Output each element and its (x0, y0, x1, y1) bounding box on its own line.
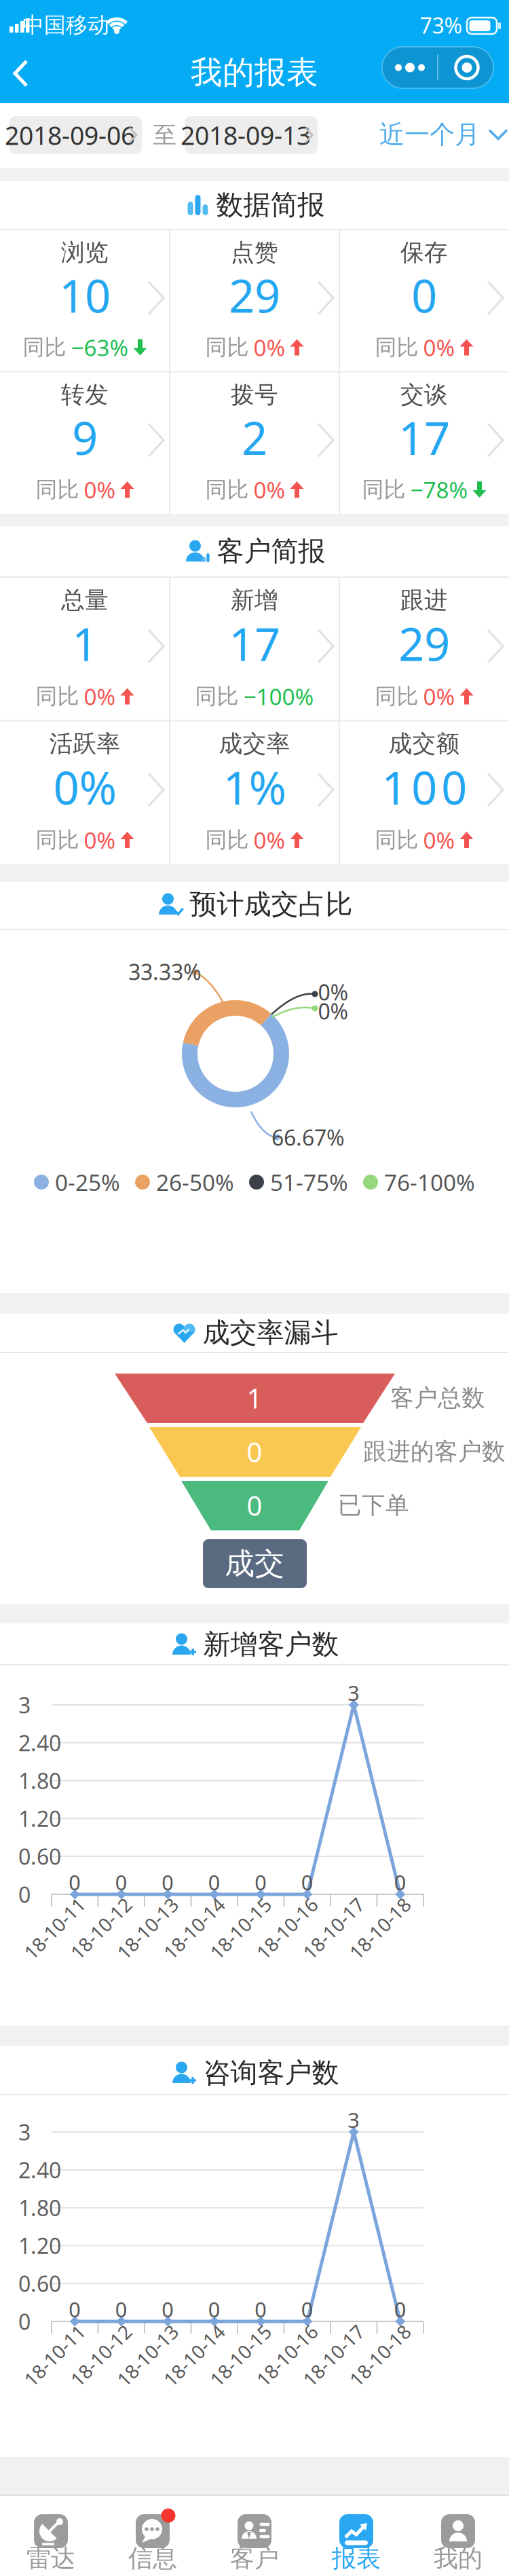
staticText: 同比 (36, 476, 79, 503)
staticText: 2 (242, 407, 267, 467)
staticText: −78% (410, 475, 468, 505)
button[interactable]: 报表 (305, 2495, 407, 2576)
staticText: 0 (301, 1868, 313, 1896)
button[interactable]: 总量 (0, 577, 170, 721)
staticText: 0 (301, 2295, 313, 2323)
staticText: 近一个月 (379, 119, 480, 150)
staticText: 同比 (205, 827, 249, 853)
button[interactable]: 交谈 (339, 372, 509, 514)
staticText: 同比 (375, 334, 418, 361)
button[interactable]: Home (438, 47, 493, 88)
staticText: 0 (162, 1868, 174, 1896)
staticText: 0% (253, 475, 285, 505)
staticText: −100% (243, 681, 314, 711)
staticText: 同比 (36, 827, 79, 853)
button[interactable]: Back (14, 60, 29, 87)
staticText: 同比 (205, 476, 249, 503)
staticText: 3 (348, 1679, 360, 1706)
staticText: 18-10-18 (341, 1916, 419, 1941)
staticText: −63% (71, 332, 129, 362)
button[interactable]: 近一个月 (379, 119, 507, 150)
staticText: 0% (84, 475, 116, 505)
staticText: 1.80 (18, 2193, 61, 2222)
staticText: 0 (208, 2295, 220, 2323)
staticText: 18-10-16 (248, 1916, 326, 1941)
staticText: 我的报表 (191, 53, 318, 92)
button[interactable]: 客户 (204, 2495, 305, 2576)
staticText: 0% (423, 825, 455, 855)
button[interactable]: 拨号 (170, 372, 339, 514)
staticText: 2.40 (18, 2155, 61, 2184)
staticText: 咨询客户数 (203, 2056, 339, 2090)
staticText: 点赞 (231, 238, 278, 267)
staticText: 新增 (231, 586, 278, 615)
staticText: 同比 (195, 683, 239, 710)
staticText: 浏览 (61, 238, 109, 267)
staticText: 18-10-14 (155, 1916, 233, 1941)
button[interactable]: 2018-09-06 (9, 116, 142, 154)
staticText: 10 (59, 265, 111, 325)
button[interactable]: 浏览 (0, 229, 170, 372)
staticText: 18-10-13 (109, 1916, 186, 1941)
staticText: 我的 (434, 2543, 483, 2573)
staticText: 0 (247, 1487, 262, 1523)
staticText: 拨号 (231, 380, 278, 409)
staticText: 3 (348, 2106, 360, 2134)
staticText: 0 (208, 1868, 220, 1896)
staticText: 33.33% (128, 957, 202, 986)
staticText: 18-10-11 (16, 1916, 93, 1941)
staticText: 1.80 (18, 1766, 61, 1795)
staticText: 0 (18, 1880, 31, 1909)
button[interactable]: 保存 (339, 229, 509, 372)
staticText: 26-50% (156, 1167, 234, 1197)
button[interactable]: 点赞 (170, 229, 339, 372)
staticText: 0% (253, 825, 285, 855)
staticText: 0 (394, 2295, 406, 2323)
staticText: 100 (381, 757, 467, 817)
button[interactable]: 跟进 (339, 577, 509, 721)
button[interactable]: 我的 (407, 2495, 509, 2576)
staticText: 成交 (225, 1545, 284, 1582)
staticText: 保存 (400, 238, 448, 267)
staticText: 0% (53, 757, 116, 817)
staticText: 18-10-15 (202, 2343, 279, 2368)
staticText: 3 (18, 1690, 31, 1719)
staticText: 17 (398, 407, 450, 467)
staticText: 活跃率 (49, 729, 120, 758)
staticText: 0.60 (18, 2269, 61, 2298)
staticText: 18-10-18 (341, 2343, 419, 2368)
staticText: 73% (420, 11, 463, 40)
button[interactable]: 雷达 (0, 2495, 102, 2576)
button[interactable]: 活跃率 (0, 721, 170, 864)
staticText: 0 (18, 2307, 31, 2336)
staticText: 18-10-13 (109, 2343, 186, 2368)
staticText: 成交额 (389, 729, 460, 758)
staticText: 51-75% (270, 1167, 348, 1197)
staticText: 总量 (61, 586, 109, 615)
staticText: 1 (247, 1380, 262, 1416)
staticText: 报表 (332, 2543, 381, 2573)
button[interactable]: 转发 (0, 372, 170, 514)
button[interactable]: 信息 (102, 2495, 204, 2576)
button[interactable]: 成交额 (339, 721, 509, 864)
staticText: 0.60 (18, 1842, 61, 1871)
staticText: 同比 (36, 683, 79, 710)
staticText: 17 (229, 613, 280, 674)
staticText: 2018-09-13 (181, 118, 311, 152)
staticText: 0% (84, 825, 116, 855)
staticText: 2018-09-06 (5, 118, 135, 152)
staticText: 0% (423, 332, 455, 362)
staticText: 0 (115, 2295, 127, 2323)
staticText: 0 (394, 1868, 406, 1896)
button[interactable]: More (382, 47, 438, 88)
staticText: 跟进 (400, 586, 448, 615)
staticText: 至 (153, 121, 177, 150)
button[interactable]: 成交率 (170, 721, 339, 864)
staticText: 0 (411, 265, 437, 325)
button[interactable]: 2018-09-13 (185, 116, 318, 154)
staticText: 29 (398, 613, 450, 674)
button[interactable]: 新增 (170, 577, 339, 721)
staticText: 1 (72, 613, 98, 674)
staticText: 客户 (230, 2543, 279, 2573)
staticText: 18-10-11 (16, 2343, 93, 2368)
